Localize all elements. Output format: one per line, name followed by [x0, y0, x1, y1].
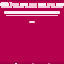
button[interactable]: Tab 2: [31, 62, 34, 64]
button[interactable]: Tab 3: [47, 62, 50, 64]
button[interactable]: Add: [29, 21, 35, 23]
button[interactable]: Tab 1: [14, 62, 17, 64]
button[interactable]: [4, 11, 60, 14]
